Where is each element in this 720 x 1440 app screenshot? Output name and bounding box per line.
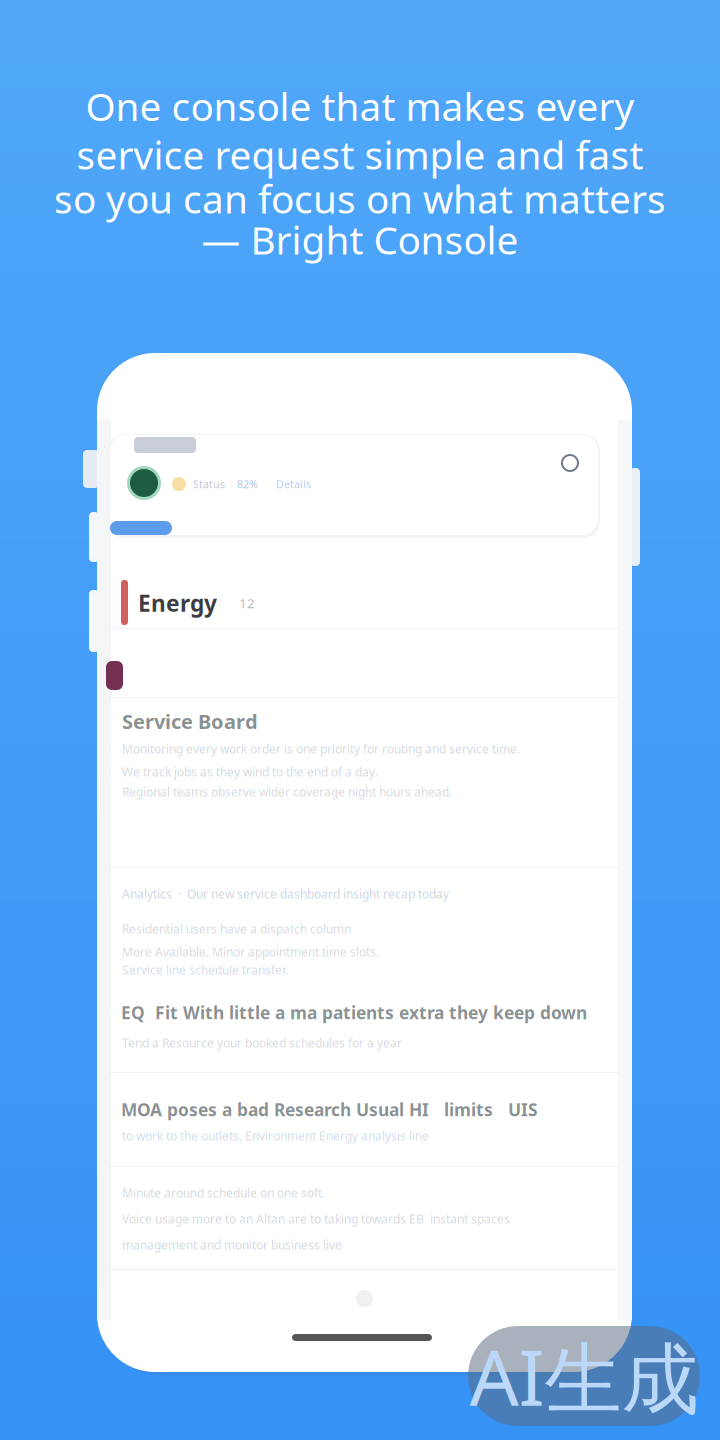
staticText: — Bright Console: [201, 214, 518, 265]
button[interactable]: MOA poses a bad Research Usual HI limits…: [110, 1091, 618, 1147]
button[interactable]: Service Board: [110, 700, 618, 800]
staticText: to work to the outlets, Environment Ener…: [122, 1128, 429, 1144]
staticText: Regional teams observe wider coverage ni…: [122, 784, 452, 800]
button[interactable]: Search: [556, 449, 584, 477]
staticText: EQ Fit With little a ma patients extra t…: [121, 1001, 587, 1024]
button[interactable]: EQ Fit With little a ma patients extra t…: [110, 994, 618, 1054]
staticText: management and monitor business live: [122, 1237, 342, 1253]
staticText: Voice usage more to an Altan are to taki…: [122, 1211, 510, 1227]
staticText: AI生成: [469, 1324, 698, 1428]
staticText: We track jobs as they wind to the end of…: [122, 764, 378, 780]
staticText: 12: [239, 594, 255, 612]
staticText: Minute around schedule on one soft.: [122, 1185, 325, 1201]
staticText: so you can focus on what matters: [54, 173, 666, 224]
staticText: service request simple and fast: [76, 129, 643, 180]
button[interactable]: Energy: [110, 572, 618, 630]
staticText: One console that makes every: [85, 80, 634, 132]
staticText: Service line schedule transfer.: [122, 962, 288, 978]
staticText: Residential users have a dispatch column: [122, 921, 351, 937]
button[interactable]: Account: [127, 466, 161, 500]
staticText: Analytics · Our new service dashboard in…: [122, 886, 449, 902]
staticText: Tend a Resource your booked schedules fo…: [122, 1035, 402, 1051]
staticText: Energy: [138, 588, 217, 618]
staticText: 82%: [237, 477, 258, 491]
staticText: Service Board: [122, 708, 258, 735]
staticText: More Available. Minor appointment time s…: [122, 944, 379, 960]
staticText: Details: [276, 477, 311, 491]
staticText: MOA poses a bad Research Usual HI limits…: [121, 1098, 538, 1121]
staticText: Monitoring every work order is one prior…: [122, 741, 520, 757]
staticText: Status: [193, 477, 225, 491]
